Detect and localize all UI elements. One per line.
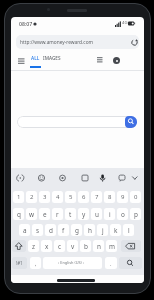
button[interactable]: 5 (65, 191, 76, 203)
staticText: g (75, 226, 79, 235)
staticText: 4 (56, 193, 60, 201)
button[interactable]: l (123, 224, 134, 236)
button[interactable]: u (91, 208, 102, 220)
button[interactable]: j (97, 224, 108, 236)
button[interactable]: , (30, 257, 41, 269)
button[interactable]: a (19, 224, 30, 236)
button[interactable]: v (67, 240, 78, 252)
staticText: r (56, 210, 59, 219)
staticText: l (128, 226, 130, 235)
staticText: . (110, 260, 112, 267)
button[interactable]: 3 (39, 191, 50, 203)
button[interactable]: o (117, 208, 128, 220)
staticText: 9 (121, 193, 125, 201)
staticText: 8 (108, 193, 112, 201)
staticText: IMAGES (43, 55, 61, 61)
staticText: o (121, 210, 125, 219)
button[interactable] (97, 57, 103, 63)
button[interactable]: 2 (26, 191, 37, 203)
staticText: v (71, 242, 75, 251)
staticText: 1 (17, 193, 21, 201)
button[interactable]: 7 (91, 191, 102, 203)
staticText: t (69, 210, 72, 219)
button[interactable]: b (80, 240, 91, 252)
staticText: ALL (31, 55, 40, 62)
button[interactable]: 4 (52, 191, 63, 203)
button[interactable]: n (93, 240, 104, 252)
button[interactable]: x (41, 240, 52, 252)
button[interactable] (12, 240, 26, 252)
staticText: 0 (134, 193, 138, 201)
button[interactable]: 8 (104, 191, 115, 203)
button[interactable] (119, 257, 142, 269)
staticText: w (29, 210, 35, 219)
staticText: z (32, 242, 36, 251)
button[interactable]: k (110, 224, 121, 236)
staticText: s (36, 226, 40, 235)
staticText: http://www.amoney-reward.com (20, 39, 94, 46)
staticText: n (97, 242, 101, 251)
staticText: 7 (95, 193, 99, 201)
button[interactable]: c (54, 240, 65, 252)
staticText: d (49, 226, 53, 235)
button[interactable]: t (65, 208, 76, 220)
button[interactable]: q (13, 208, 24, 220)
button[interactable]: w (26, 208, 37, 220)
button[interactable]: 6 (78, 191, 89, 203)
button[interactable] (131, 39, 138, 46)
button[interactable]: r (52, 208, 63, 220)
staticText: a (23, 226, 27, 235)
button[interactable]: g (71, 224, 82, 236)
button[interactable]: f (58, 224, 69, 236)
button[interactable] (121, 240, 141, 252)
button[interactable] (18, 58, 25, 64)
button[interactable]: p (130, 208, 141, 220)
staticText: , (35, 260, 37, 267)
button[interactable]: h (84, 224, 95, 236)
staticText: f (62, 226, 65, 235)
button[interactable]: z (28, 240, 39, 252)
staticText: j (102, 226, 104, 235)
button[interactable] (16, 35, 139, 49)
staticText: 08:07 (19, 20, 33, 27)
staticText: u (95, 210, 99, 219)
staticText: q (17, 210, 21, 219)
button[interactable] (113, 57, 120, 64)
button[interactable] (43, 257, 102, 269)
staticText: 5 (69, 193, 73, 201)
staticText: 4G (122, 20, 128, 26)
staticText: k (114, 226, 118, 235)
staticText: m (109, 242, 115, 251)
button[interactable]: ALL (30, 54, 42, 68)
staticText: 3 (43, 193, 47, 201)
button[interactable]: y (78, 208, 89, 220)
staticText: ‹ English (US) › (58, 260, 84, 265)
staticText: i (109, 210, 111, 219)
staticText: 2 (30, 193, 34, 201)
button[interactable]: . (105, 257, 117, 269)
button[interactable]: d (45, 224, 56, 236)
staticText: e (43, 210, 47, 219)
button[interactable]: 1 (13, 191, 24, 203)
button[interactable]: m (106, 240, 117, 252)
button[interactable] (125, 116, 137, 128)
staticText: b (84, 242, 88, 251)
staticText: x (45, 242, 49, 251)
staticText: c (58, 242, 62, 251)
staticText: 6 (82, 193, 86, 201)
staticText: h (88, 226, 92, 235)
button[interactable]: s (32, 224, 43, 236)
button[interactable]: i (104, 208, 115, 220)
button[interactable]: e (39, 208, 50, 220)
button[interactable]: 9 (117, 191, 128, 203)
staticText: y (82, 210, 86, 219)
button[interactable]: 0 (130, 191, 141, 203)
button[interactable]: !#1 (12, 257, 27, 269)
button[interactable] (17, 116, 137, 128)
staticText: !#1 (16, 260, 23, 266)
staticText: p (134, 210, 138, 219)
